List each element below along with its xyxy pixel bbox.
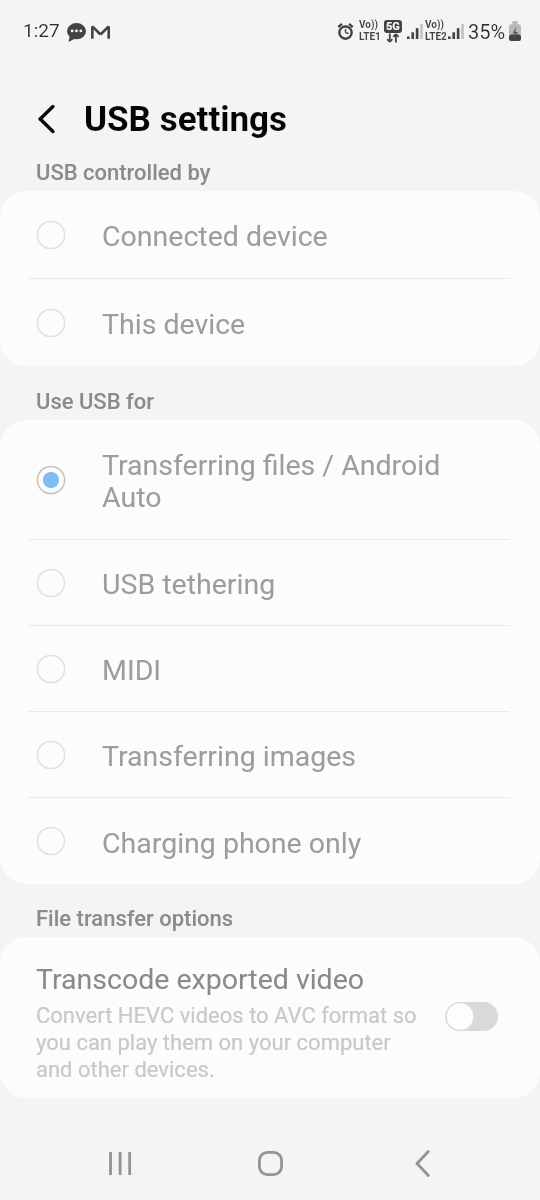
staticText: Convert HEVC videos to AVC format so you… bbox=[36, 1003, 421, 1083]
staticText: USB settings bbox=[84, 99, 288, 140]
button[interactable]: Home bbox=[238, 1131, 303, 1196]
staticText: File transfer options bbox=[36, 906, 234, 932]
staticText: MIDI bbox=[102, 654, 442, 687]
staticText: 1:27 bbox=[23, 19, 60, 41]
button[interactable]: Transcode exported video bbox=[0, 937, 540, 1098]
staticText: Charging phone only bbox=[102, 827, 442, 860]
button[interactable]: Recent apps bbox=[87, 1131, 152, 1196]
staticText: LTE1 bbox=[359, 31, 381, 43]
staticText: Transferring files / Android Auto bbox=[102, 449, 442, 514]
staticText: This device bbox=[102, 308, 442, 341]
staticText: Transferring images bbox=[102, 740, 442, 773]
button[interactable]: Transferring images bbox=[0, 712, 540, 797]
staticText: Transcode exported video bbox=[36, 963, 365, 996]
staticText: USB tethering bbox=[102, 568, 442, 601]
staticText: 35% bbox=[468, 20, 506, 43]
staticText: USB controlled by bbox=[36, 160, 211, 186]
button[interactable]: Navigate up bbox=[26, 99, 66, 139]
button[interactable]: Charging phone only bbox=[0, 798, 540, 884]
staticText: LTE2 bbox=[425, 31, 447, 43]
button[interactable]: MIDI bbox=[0, 626, 540, 711]
staticText: Connected device bbox=[102, 220, 442, 253]
button[interactable]: Connected device bbox=[0, 191, 540, 278]
button[interactable]: Back bbox=[390, 1131, 455, 1196]
button[interactable]: USB tethering bbox=[0, 540, 540, 625]
button[interactable]: This device bbox=[0, 279, 540, 366]
button[interactable]: Transcode exported video bbox=[445, 1002, 498, 1031]
staticText: 5G bbox=[386, 20, 400, 33]
staticText: Use USB for bbox=[36, 389, 155, 415]
staticText: Vo)) bbox=[425, 19, 444, 31]
button[interactable]: Transferring files / Android Auto bbox=[0, 420, 540, 539]
staticText: Vo)) bbox=[359, 19, 378, 31]
